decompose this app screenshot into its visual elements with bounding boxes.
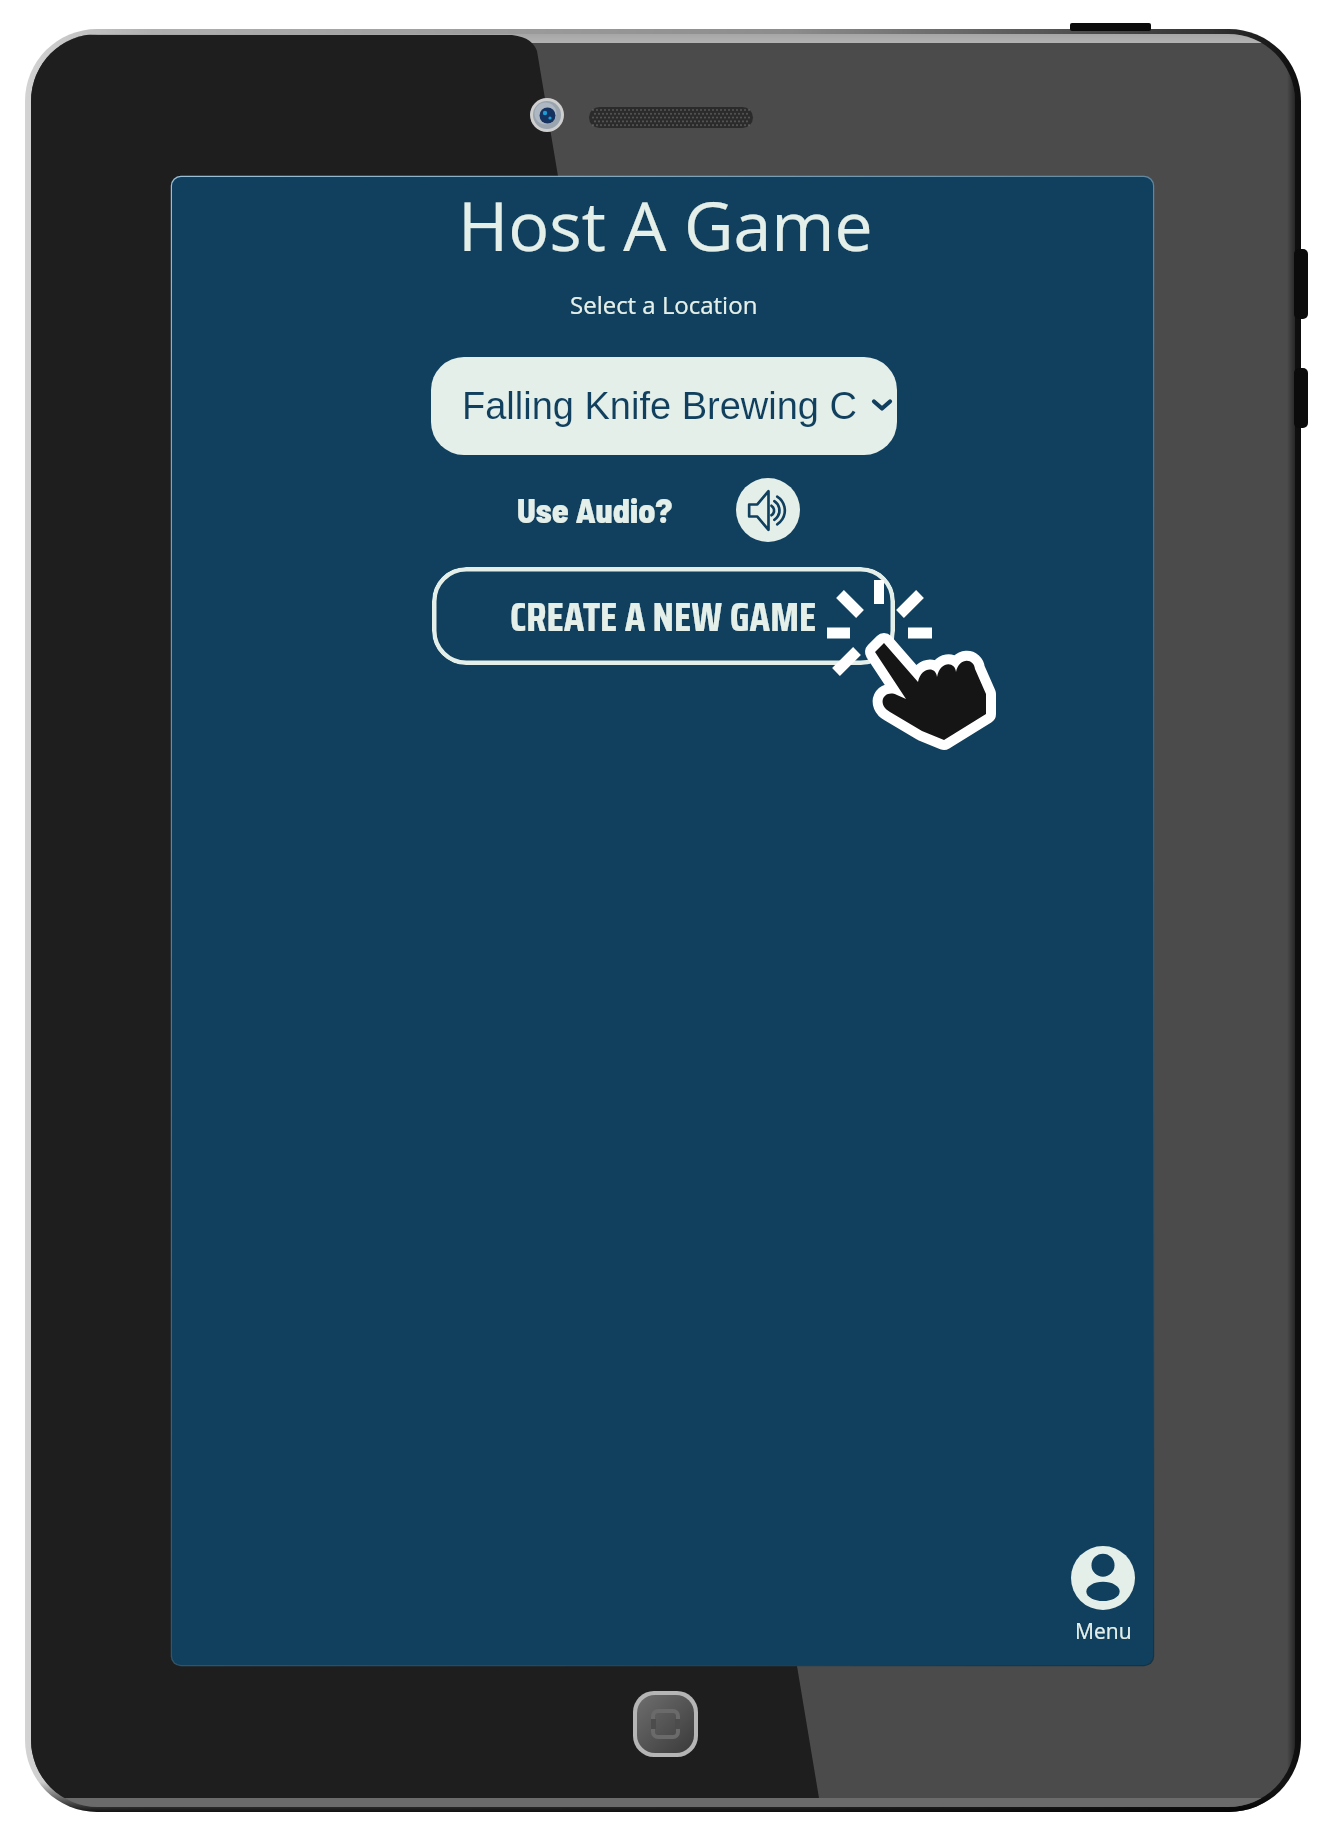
- button[interactable]: Menu: [1062, 1539, 1144, 1647]
- button[interactable]: Falling Knife Brewing C: [431, 357, 897, 455]
- button[interactable]: Toggle audio: [736, 478, 800, 542]
- staticText: CREATE A NEW GAME: [510, 584, 817, 649]
- button[interactable]: CREATE A NEW GAME: [432, 567, 895, 665]
- staticText: Host A Game: [458, 178, 873, 271]
- staticText: Falling Knife Brewing C: [462, 385, 857, 427]
- staticText: Menu: [1075, 1617, 1132, 1646]
- staticText: Select a Location: [570, 288, 758, 321]
- staticText: Use Audio?: [517, 489, 673, 530]
